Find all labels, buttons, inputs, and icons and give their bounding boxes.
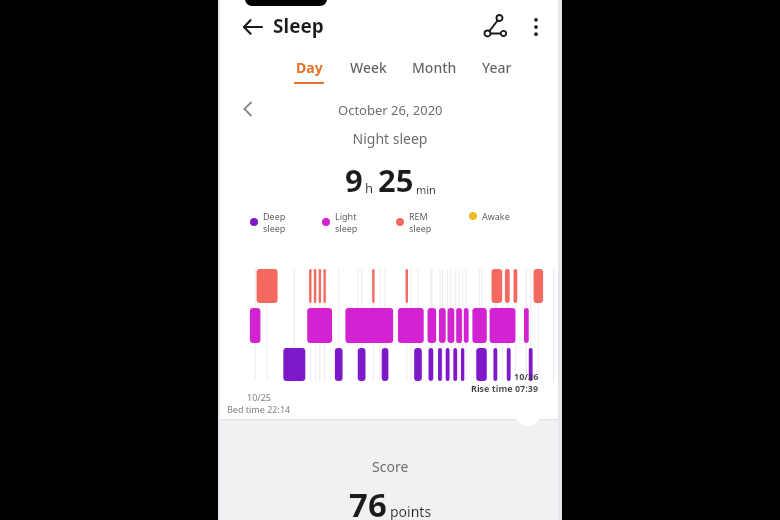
button[interactable]: Share — [476, 7, 516, 47]
button[interactable]: More options — [516, 7, 556, 47]
staticText: Sleep — [273, 13, 324, 39]
staticText: October 26, 2020 — [338, 101, 443, 119]
button[interactable]: Light — [322, 210, 358, 234]
button[interactable]: Week — [345, 56, 392, 84]
staticText: points — [390, 502, 432, 520]
staticText: Score — [372, 457, 409, 476]
button[interactable]: Deep — [250, 210, 286, 234]
button[interactable]: Awake — [469, 210, 510, 222]
button[interactable]: Month — [407, 56, 462, 84]
staticText: Deep — [263, 210, 286, 222]
staticText: Awake — [482, 210, 510, 222]
button[interactable]: Back — [234, 8, 272, 46]
button[interactable]: Year — [477, 56, 517, 84]
staticText: 76 — [349, 482, 387, 520]
button[interactable]: REM — [396, 210, 432, 234]
staticText: min — [416, 182, 436, 197]
staticText: 9 — [345, 159, 363, 201]
staticText: h — [365, 179, 374, 197]
staticText: Light — [335, 210, 357, 222]
staticText: Rise time 07:39 — [471, 382, 539, 394]
staticText: Bed time 22:14 — [227, 403, 291, 415]
staticText: 25 — [378, 159, 414, 201]
staticText: Month — [412, 58, 457, 77]
staticText: sleep — [409, 222, 432, 234]
staticText: sleep — [263, 222, 286, 234]
staticText: Day — [296, 58, 323, 77]
staticText: Week — [350, 58, 387, 77]
button[interactable]: Previous day — [230, 94, 264, 124]
button[interactable]: Day — [289, 56, 329, 86]
staticText: REM — [409, 210, 428, 222]
staticText: 10/26 — [514, 370, 539, 382]
staticText: sleep — [335, 222, 358, 234]
staticText: Year — [482, 58, 512, 77]
staticText: 10/25 — [247, 391, 271, 403]
staticText: Night sleep — [218, 129, 562, 148]
button[interactable]: Scroll — [515, 400, 541, 426]
